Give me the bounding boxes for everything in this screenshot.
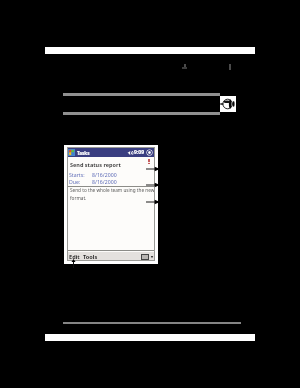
button[interactable]: Close	[146, 149, 153, 156]
button[interactable]: Tools	[83, 253, 98, 261]
staticText: 8/16/2000	[92, 178, 117, 184]
staticText: Starts:	[69, 171, 85, 178]
staticText: 8/16/2000	[92, 171, 117, 178]
staticText: 9:09	[134, 149, 144, 156]
button[interactable]: Keyboard	[141, 254, 149, 260]
staticText: Send status report	[70, 161, 121, 168]
button[interactable]: Edit	[69, 253, 80, 261]
staticText: Send to the whole team using the new for…	[70, 187, 155, 201]
staticText: Tasks	[77, 150, 90, 156]
button[interactable]: Audio note	[220, 96, 236, 112]
staticText: Due:	[69, 178, 81, 184]
